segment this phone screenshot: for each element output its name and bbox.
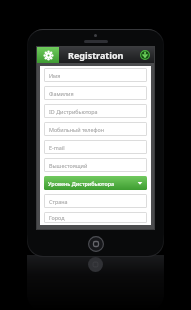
button[interactable]: Мобильный телефон (45, 123, 146, 135)
staticText: Фамилия (49, 90, 74, 97)
button[interactable]: Город (45, 213, 146, 222)
staticText: Мобильный телефон (49, 126, 104, 133)
button[interactable]: Home (88, 236, 104, 252)
staticText: Имя (49, 72, 61, 79)
button[interactable]: Страна (45, 195, 146, 207)
staticText: Уровень Дистрибьютора (48, 180, 115, 187)
button[interactable]: Settings (37, 47, 59, 63)
staticText: E-mail (49, 144, 65, 151)
staticText: Страна (49, 198, 68, 205)
button[interactable]: ID Дистрибьютора (45, 105, 146, 117)
button[interactable]: Уровень Дистрибьютора (44, 176, 147, 190)
staticText: Вышестоящий (49, 162, 88, 169)
button[interactable]: Фамилия (45, 87, 146, 99)
staticText: ID Дистрибьютора (49, 108, 98, 115)
staticText: Registration (68, 49, 124, 61)
button[interactable]: Имя (45, 69, 146, 81)
button[interactable]: Download (136, 47, 154, 63)
button[interactable]: Вышестоящий (45, 159, 146, 171)
button[interactable]: E-mail (45, 141, 146, 153)
staticText: Город (49, 214, 65, 221)
